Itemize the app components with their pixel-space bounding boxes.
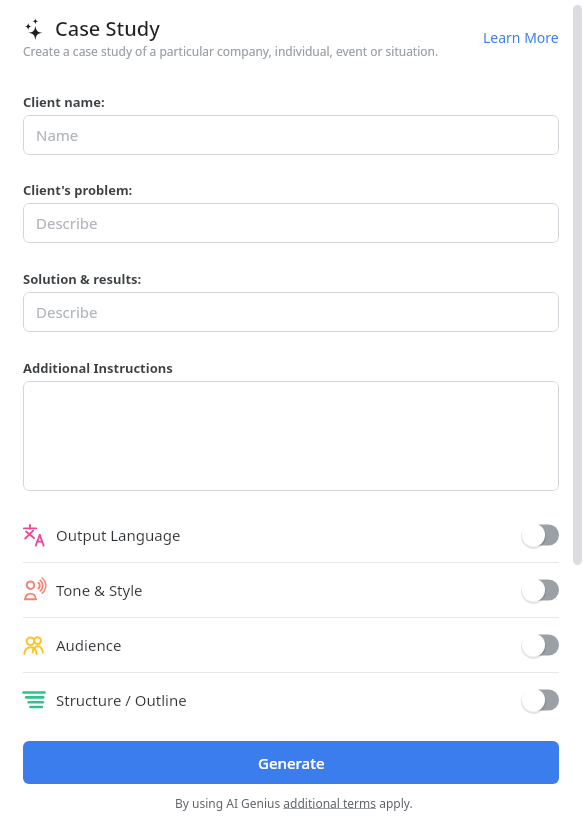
staticText: Tone & Style bbox=[56, 580, 143, 600]
button[interactable]: Toggle option bbox=[521, 688, 559, 712]
staticText: Structure / Outline bbox=[56, 690, 187, 710]
staticText: By using AI Genius additional terms appl… bbox=[175, 795, 413, 811]
staticText: Client's problem: bbox=[23, 181, 133, 199]
staticText: Describe bbox=[36, 302, 98, 322]
button[interactable]: Learn More bbox=[480, 25, 562, 50]
staticText: Create a case study of a particular comp… bbox=[23, 43, 439, 59]
button[interactable] bbox=[23, 381, 559, 491]
staticText: Describe bbox=[36, 213, 98, 233]
button[interactable]: Audience bbox=[23, 618, 559, 672]
button[interactable]: Describe bbox=[23, 292, 559, 332]
staticText: Learn More bbox=[483, 28, 559, 47]
button[interactable]: Toggle option bbox=[521, 578, 559, 602]
staticText: Case Study bbox=[55, 15, 160, 42]
button[interactable]: Toggle option bbox=[521, 523, 559, 547]
staticText: Name bbox=[36, 125, 79, 145]
staticText: Additional Instructions bbox=[23, 359, 173, 377]
button[interactable]: Tone & Style bbox=[23, 563, 559, 617]
staticText: Client name: bbox=[23, 93, 105, 111]
staticText: Audience bbox=[56, 635, 122, 655]
button[interactable]: Structure / Outline bbox=[23, 673, 559, 727]
staticText: Output Language bbox=[56, 525, 181, 545]
staticText: Solution & results: bbox=[23, 270, 142, 288]
button[interactable]: Name bbox=[23, 115, 559, 155]
button[interactable]: Generate bbox=[23, 741, 559, 784]
button[interactable]: Toggle option bbox=[521, 633, 559, 657]
staticText: Generate bbox=[258, 753, 325, 773]
button[interactable]: Describe bbox=[23, 203, 559, 243]
button[interactable]: Output Language bbox=[23, 508, 559, 562]
